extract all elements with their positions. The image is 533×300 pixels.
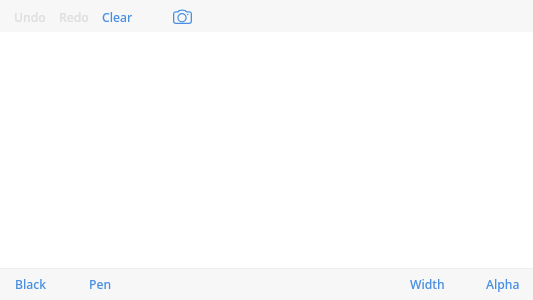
button[interactable]: Undo xyxy=(8,1,52,33)
button[interactable]: Clear xyxy=(96,1,139,33)
staticText: Width xyxy=(410,276,445,293)
staticText: Black xyxy=(15,276,47,293)
button[interactable]: Redo xyxy=(53,1,95,33)
staticText: Redo xyxy=(59,9,89,26)
button[interactable]: Take photo xyxy=(173,9,192,24)
button[interactable]: Pen xyxy=(82,269,119,300)
button[interactable]: Width xyxy=(403,269,452,300)
staticText: Clear xyxy=(102,9,133,26)
button[interactable]: Alpha xyxy=(479,269,527,300)
staticText: Alpha xyxy=(486,276,520,293)
button[interactable]: Black xyxy=(8,269,54,300)
staticText: Undo xyxy=(14,9,46,26)
staticText: Pen xyxy=(89,276,112,293)
